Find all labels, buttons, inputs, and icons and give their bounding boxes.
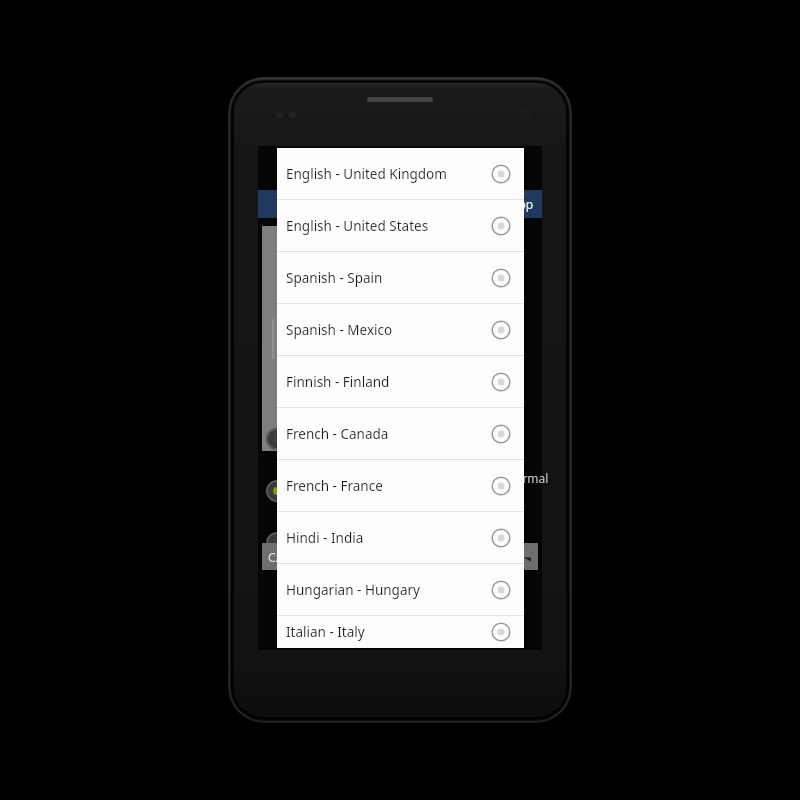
staticText: Normal	[506, 470, 549, 486]
staticText: Italian - Italy	[286, 623, 365, 641]
button[interactable]: SampleApp	[258, 190, 542, 218]
staticText: French - France	[286, 477, 383, 495]
button[interactable]: French - Canada	[277, 408, 524, 459]
button[interactable]: French - France	[277, 460, 524, 511]
staticText: SampleApp	[469, 196, 534, 212]
button[interactable]: Spanish - Spain	[277, 252, 524, 303]
button[interactable]: English - United Kingdom	[277, 148, 524, 199]
staticText: Finnish - Finland	[286, 373, 390, 391]
staticText: English - United Kingdom	[286, 165, 447, 183]
staticText: Czech	[268, 549, 302, 565]
staticText: English - United States	[286, 217, 429, 235]
button[interactable]: Italian - Italy	[277, 616, 524, 648]
button[interactable]: Finnish - Finland	[277, 356, 524, 407]
staticText: Spanish - Spain	[286, 269, 383, 287]
button[interactable]: Hindi - India	[277, 512, 524, 563]
button[interactable]: English - United States	[277, 200, 524, 251]
button[interactable]: Option	[264, 530, 290, 556]
staticText: Spanish - Mexico	[286, 321, 393, 339]
staticText: Hindi - India	[286, 529, 364, 547]
button[interactable]: Spanish - Mexico	[277, 304, 524, 355]
button[interactable]: Hungarian - Hungary	[277, 564, 524, 615]
staticText: French - Canada	[286, 425, 389, 443]
button[interactable]: Option	[264, 478, 290, 504]
button[interactable]: Option	[264, 426, 290, 452]
button[interactable]: Czech	[262, 543, 538, 570]
staticText: Hungarian - Hungary	[286, 581, 420, 599]
